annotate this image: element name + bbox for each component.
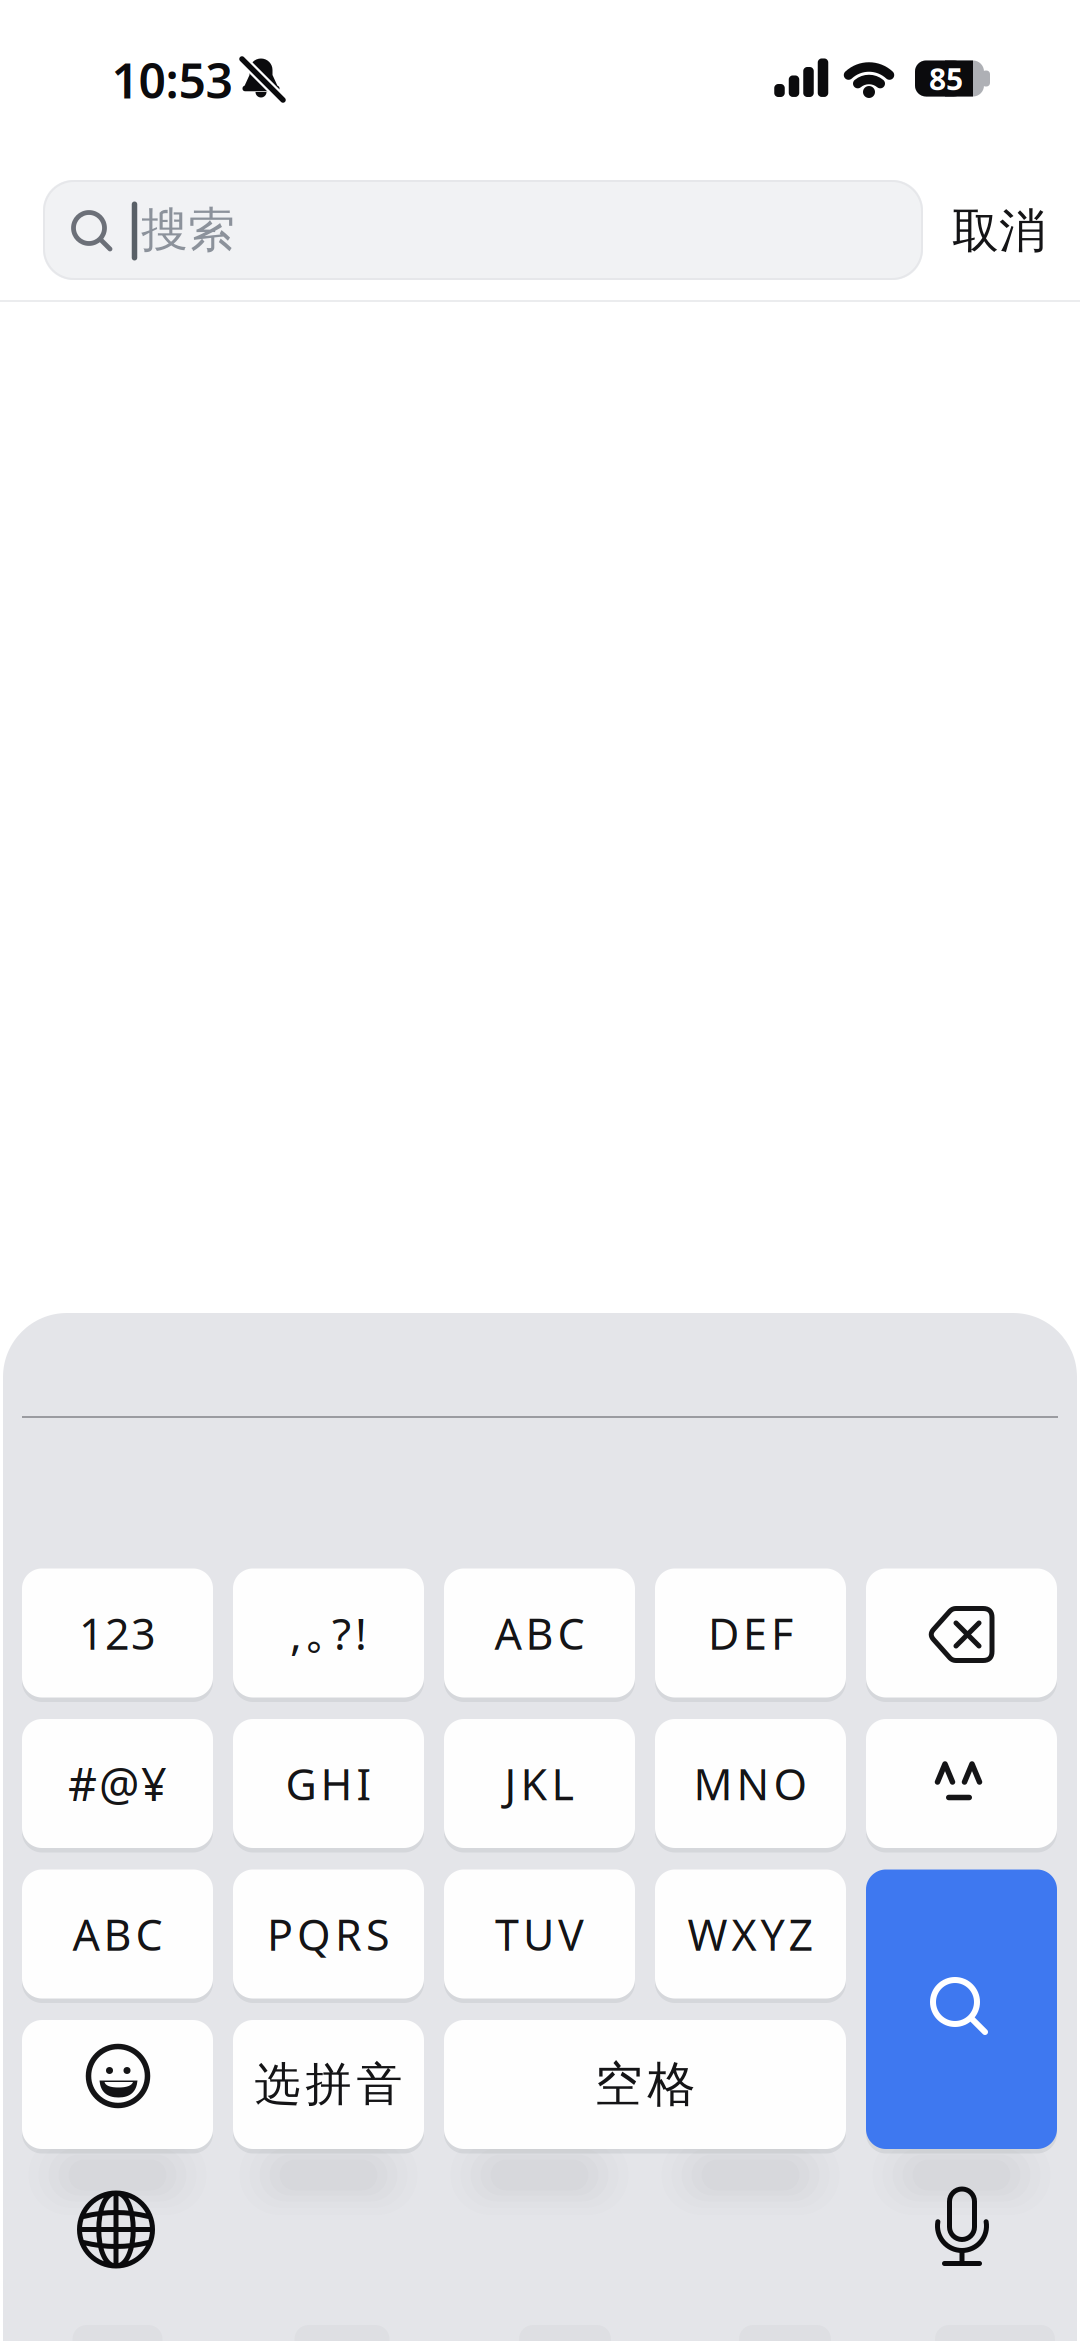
button[interactable]: ,｡?! — [233, 1568, 424, 1697]
button[interactable]: Next keyboard — [58, 2171, 174, 2287]
button[interactable]: #@¥ — [22, 1719, 213, 1848]
button[interactable]: MNO — [655, 1719, 846, 1848]
button[interactable]: DEF — [655, 1568, 846, 1697]
staticText: JKL — [504, 1755, 574, 1812]
button[interactable]: 123 — [22, 1568, 213, 1697]
button[interactable]: TUV — [444, 1869, 635, 1998]
button[interactable]: PQRS — [233, 1869, 424, 1998]
staticText: ABC — [72, 1905, 162, 1962]
staticText: TUV — [495, 1905, 584, 1962]
staticText: ,｡?! — [290, 1604, 367, 1662]
staticText: 10:53 — [111, 48, 232, 112]
button[interactable]: 取消 — [929, 181, 1069, 281]
button[interactable]: 搜索 — [43, 180, 923, 280]
button[interactable]: ABC — [22, 1869, 213, 1998]
button[interactable]: Dictation — [904, 2160, 1020, 2276]
button[interactable]: GHI — [233, 1719, 424, 1848]
staticText: 85 — [929, 59, 963, 98]
staticText: PQRS — [267, 1905, 390, 1962]
staticText: 搜索 — [141, 201, 235, 259]
button[interactable]: 选拼音 — [233, 2020, 424, 2149]
staticText: DEF — [708, 1604, 793, 1661]
staticText: #@¥ — [68, 1754, 167, 1813]
staticText: 空格 — [594, 2055, 695, 2114]
staticText: ABC — [494, 1604, 584, 1661]
button[interactable]: Search — [866, 1869, 1057, 2149]
button[interactable]: Emoji — [22, 2020, 213, 2149]
staticText: GHI — [285, 1755, 371, 1812]
staticText: 选拼音 — [254, 2056, 402, 2113]
button[interactable]: JKL — [444, 1719, 635, 1848]
button[interactable]: Delete — [866, 1568, 1057, 1697]
button[interactable]: ABC — [444, 1568, 635, 1697]
staticText: 取消 — [952, 202, 1046, 260]
staticText: 123 — [79, 1604, 156, 1661]
button[interactable]: 空格 — [444, 2020, 846, 2149]
button[interactable]: Emoticon ^_^ — [866, 1719, 1057, 1848]
staticText: WXYZ — [687, 1905, 813, 1962]
staticText: MNO — [693, 1755, 807, 1812]
button[interactable]: WXYZ — [655, 1869, 846, 1998]
